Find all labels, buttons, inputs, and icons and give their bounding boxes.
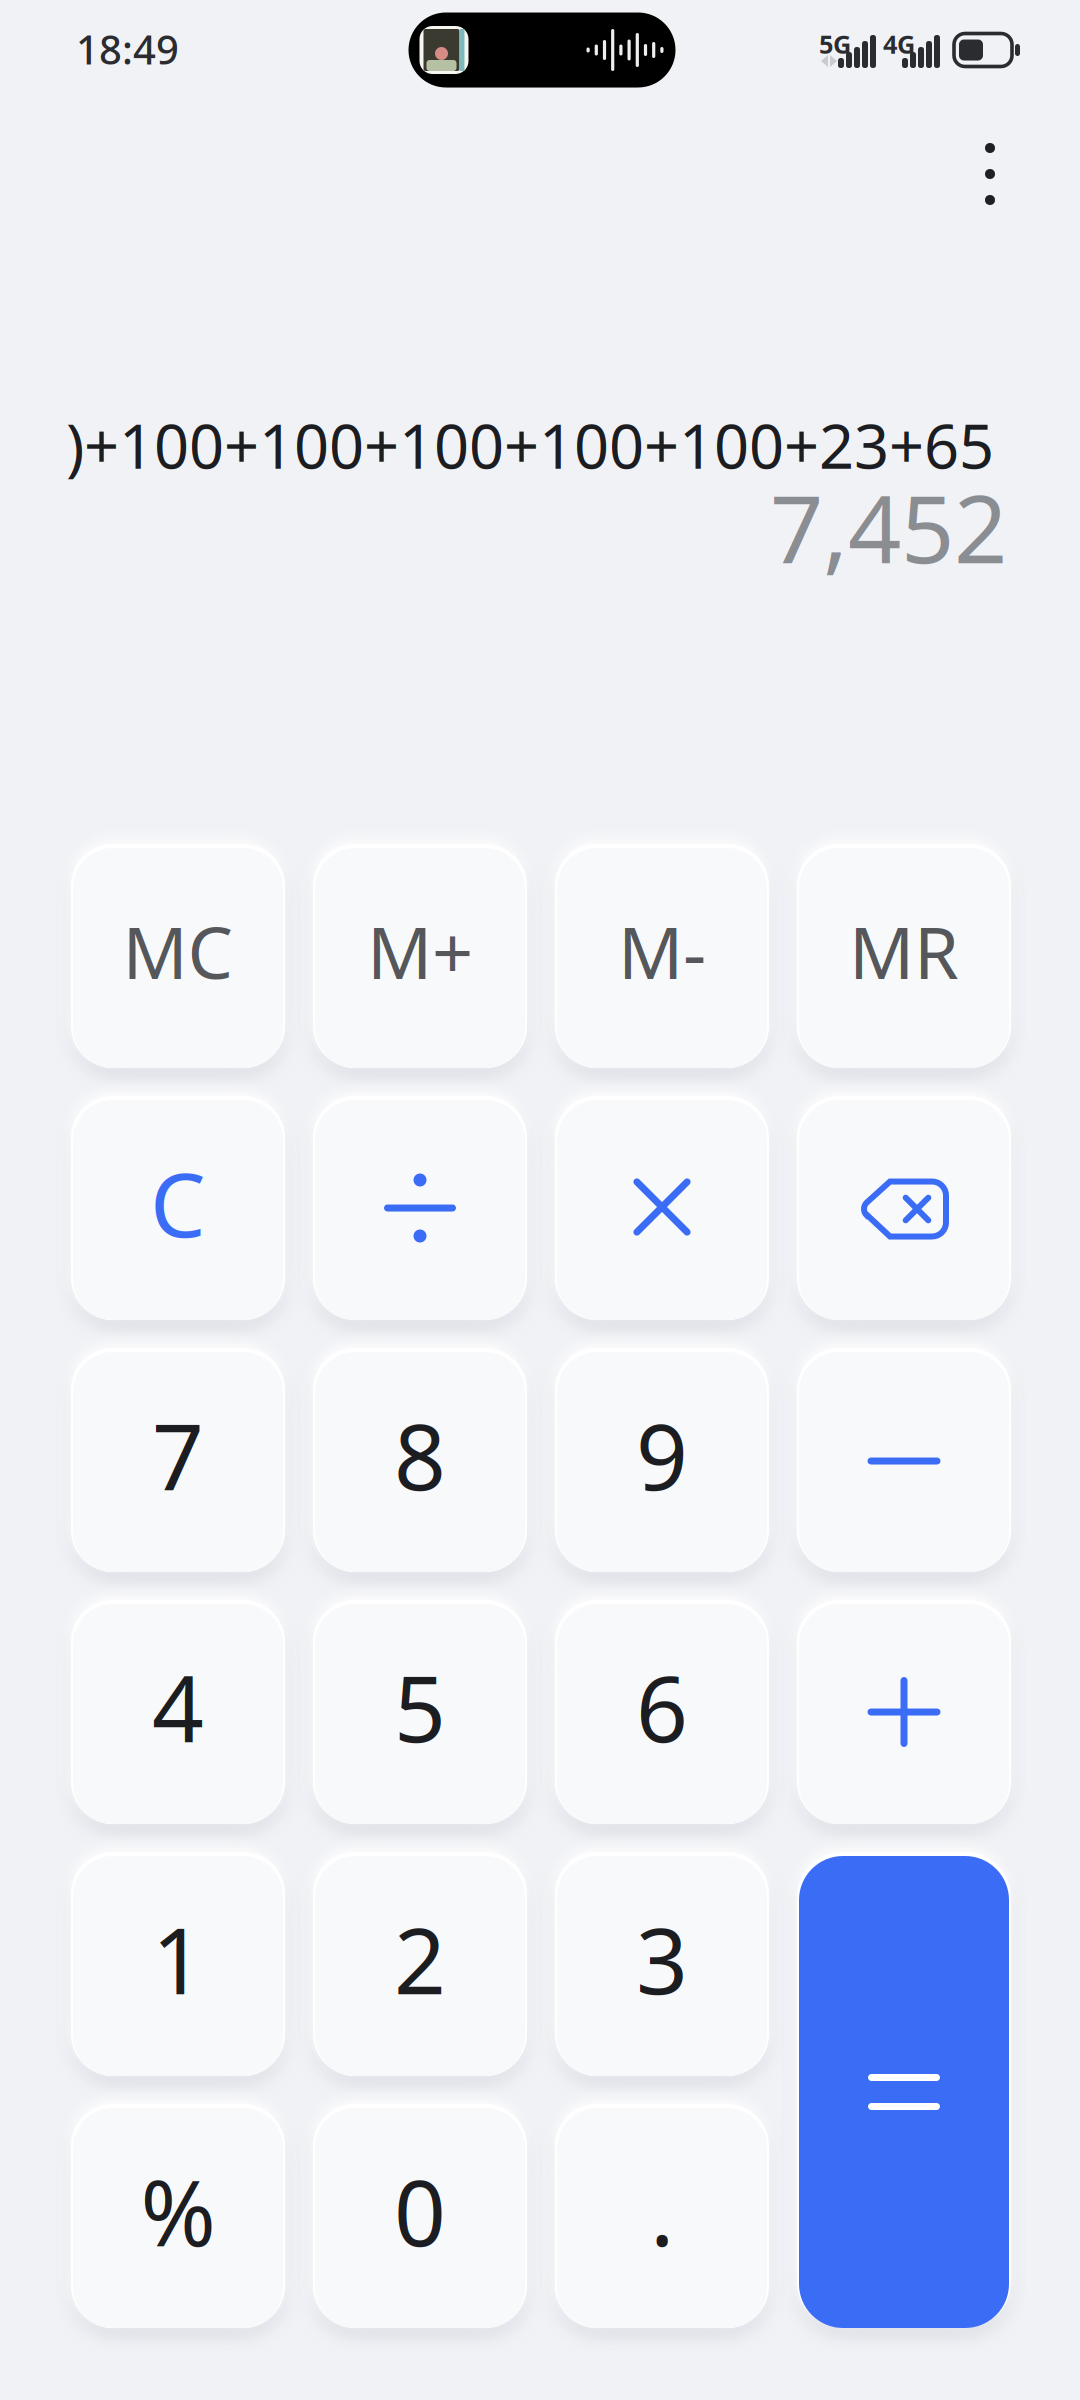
staticText: 5 [394, 1647, 446, 1767]
button[interactable]: 4 [73, 1604, 283, 1824]
button[interactable]: More options [938, 122, 1042, 226]
button[interactable]: MC [73, 848, 283, 1068]
staticText: 18:49 [76, 22, 179, 75]
button[interactable]: 1 [73, 1856, 283, 2076]
staticText: 9 [636, 1395, 688, 1515]
button[interactable]: Equals [799, 1856, 1009, 2328]
staticText: 2 [394, 1899, 446, 2019]
button[interactable]: Plus [799, 1604, 1009, 1824]
button[interactable]: Divide [315, 1100, 525, 1320]
button[interactable]: C [73, 1100, 283, 1320]
staticText: 0 [394, 2151, 446, 2271]
staticText: )+100+100+100+100+100+23+65 [66, 404, 994, 486]
button[interactable]: MR [799, 848, 1009, 1068]
button[interactable]: 7 [73, 1352, 283, 1572]
button[interactable]: M- [557, 848, 767, 1068]
staticText: MR [849, 903, 959, 999]
button[interactable]: 8 [315, 1352, 525, 1572]
button[interactable]: . [557, 2108, 767, 2328]
staticText: 4 [152, 1647, 204, 1767]
button[interactable]: M+ [315, 848, 525, 1068]
staticText: 5G [819, 27, 851, 61]
button[interactable]: 3 [557, 1856, 767, 2076]
button[interactable]: 2 [315, 1856, 525, 2076]
button[interactable]: 0 [315, 2108, 525, 2328]
staticText: C [150, 1145, 206, 1261]
button[interactable]: Backspace [799, 1100, 1009, 1320]
staticText: 1 [152, 1899, 204, 2019]
staticText: 7 [152, 1395, 204, 1515]
button[interactable]: 5 [315, 1604, 525, 1824]
staticText: M+ [367, 903, 473, 999]
button[interactable]: 9 [557, 1352, 767, 1572]
button[interactable]: % [73, 2108, 283, 2328]
staticText: 4G [883, 27, 915, 61]
staticText: 7,452 [770, 465, 1007, 589]
staticText: . [650, 2151, 674, 2271]
button[interactable]: Minus [799, 1352, 1009, 1572]
button[interactable]: Multiply [557, 1100, 767, 1320]
staticText: M- [618, 903, 706, 999]
staticText: MC [122, 903, 233, 999]
staticText: 8 [394, 1395, 446, 1515]
staticText: % [140, 2151, 215, 2271]
button[interactable]: 6 [557, 1604, 767, 1824]
staticText: 3 [636, 1899, 688, 2019]
staticText: 6 [636, 1647, 688, 1767]
